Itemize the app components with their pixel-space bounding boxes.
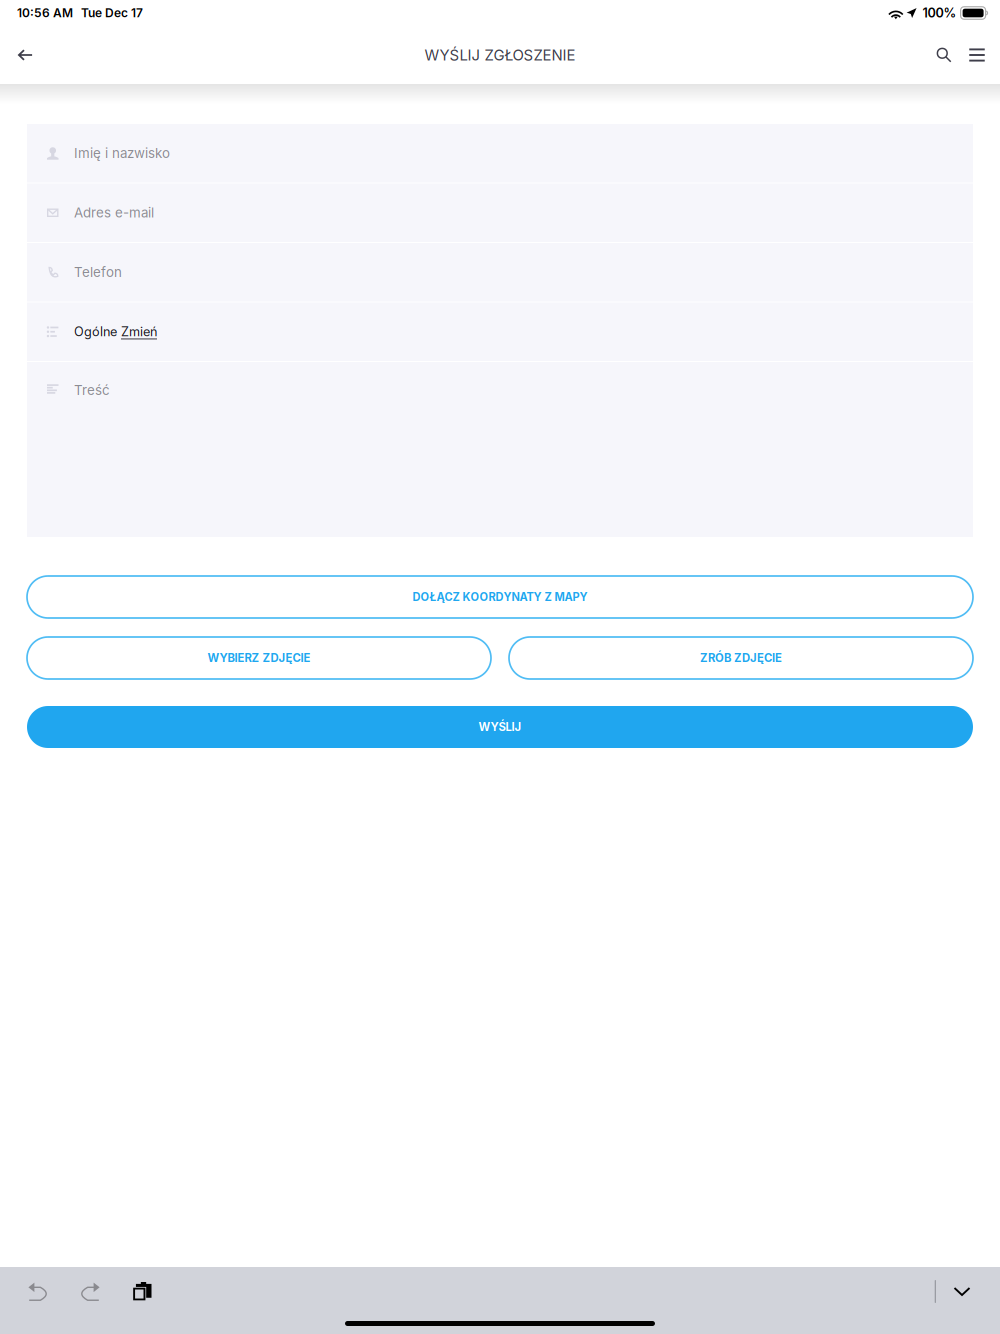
button[interactable]: Menu bbox=[954, 29, 1000, 81]
staticText: Zmień bbox=[121, 324, 157, 339]
staticText: DOŁĄCZ KOORDYNATY Z MAPY bbox=[412, 590, 587, 604]
staticText: 10:56 AM bbox=[17, 6, 73, 20]
staticText: Ogólne bbox=[74, 324, 121, 339]
staticText: WYŚLIJ bbox=[478, 720, 521, 734]
button[interactable]: Search bbox=[934, 29, 954, 81]
staticText: Tue Dec 17 bbox=[81, 6, 143, 20]
button[interactable]: DOŁĄCZ KOORDYNATY Z MAPY bbox=[27, 576, 973, 618]
staticText: 100% bbox=[923, 5, 957, 21]
button[interactable]: WYBIERZ ZDJĘCIE bbox=[27, 637, 491, 679]
button[interactable]: Hide keyboard bbox=[936, 1269, 988, 1313]
button[interactable]: Undo bbox=[12, 1269, 64, 1313]
button[interactable]: Redo bbox=[64, 1269, 116, 1313]
staticText: Adres e-mail bbox=[74, 205, 154, 221]
button[interactable]: Back bbox=[0, 29, 51, 81]
staticText: Imię i nazwisko bbox=[74, 145, 170, 161]
staticText: Telefon bbox=[74, 264, 122, 280]
button[interactable]: Zmień bbox=[121, 324, 157, 339]
button[interactable]: ZRÓB ZDJĘCIE bbox=[509, 637, 973, 679]
staticText: WYBIERZ ZDJĘCIE bbox=[207, 651, 310, 665]
staticText: WYŚLIJ ZGŁOSZENIE bbox=[424, 46, 575, 64]
staticText: ZRÓB ZDJĘCIE bbox=[700, 651, 782, 665]
button[interactable]: WYŚLIJ bbox=[27, 706, 973, 748]
staticText: Treść bbox=[74, 382, 110, 398]
button[interactable]: Paste bbox=[116, 1269, 168, 1313]
